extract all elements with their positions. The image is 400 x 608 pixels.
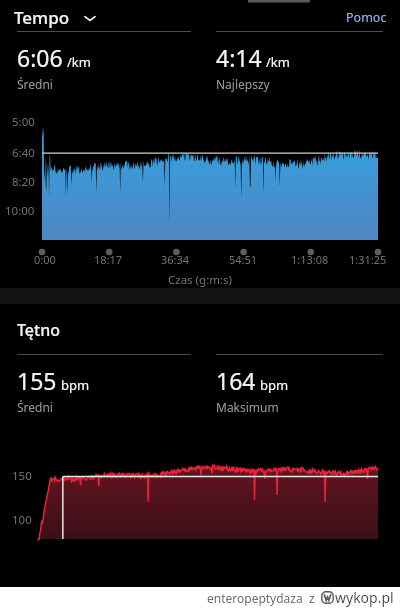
staticText: 36:34 [161,252,190,267]
staticText: Średni [17,399,53,415]
staticText: 155 [17,365,57,396]
button[interactable]: Pomoc [344,7,389,28]
staticText: Tętno [17,319,60,341]
staticText: bpm [61,376,90,394]
staticText: 18:17 [94,252,123,267]
button[interactable]: 6:06 [17,31,191,92]
staticText: Tempo [14,6,70,29]
staticText: Pomoc [346,9,387,26]
staticText: Najlepszy [216,76,270,92]
button[interactable]: 4:14 [216,31,383,92]
staticText: /km [67,53,91,71]
staticText: 1:13:08 [291,252,329,267]
staticText: 8:20 [12,174,35,190]
staticText: 5:00 [12,114,35,130]
staticText: 100 [12,512,32,528]
staticText: bpm [260,376,289,394]
staticText: 54:51 [229,252,258,267]
staticText: 164 [216,365,256,396]
staticText: /km [266,53,290,71]
button[interactable]: 155 [17,354,191,415]
staticText: 6:06 [17,42,63,73]
staticText: wykop.pl [335,588,394,607]
staticText: 10:00 [5,203,35,219]
staticText: 1:31:25 [349,252,387,267]
other: Expand metric selector [83,11,97,25]
staticText: 6:40 [12,145,35,161]
staticText: 0:00 [34,252,56,267]
button[interactable]: Tempo [14,6,97,29]
staticText: enteropeptydaza z [207,590,315,606]
button[interactable]: 164 [216,354,383,415]
staticText: Średni [17,76,53,92]
staticText: 4:14 [216,42,262,73]
staticText: Czas (g:m:s) [168,272,233,288]
staticText: Maksimum [216,399,279,415]
staticText: 150 [12,468,32,484]
button[interactable]: Tętno [17,319,400,341]
